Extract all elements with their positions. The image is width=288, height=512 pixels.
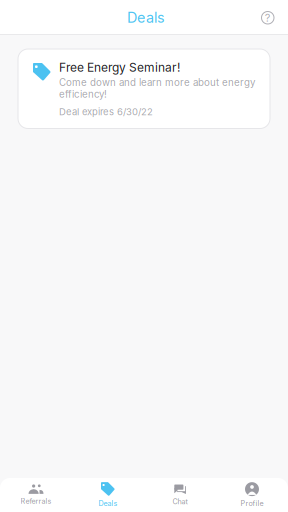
staticText: Come down and learn more about energy ef… [59, 76, 255, 100]
button[interactable]: Help [261, 10, 288, 24]
staticText: Deals [98, 499, 117, 508]
staticText: Referrals [20, 497, 51, 506]
staticText: ? [265, 11, 271, 24]
staticText: Deal expires 6/30/22 [59, 106, 153, 118]
button[interactable]: Chat [144, 478, 216, 512]
button[interactable]: Free Energy Seminar! [0, 35, 288, 128]
button[interactable]: Profile [216, 478, 288, 512]
staticText: Free Energy Seminar! [59, 60, 180, 74]
button[interactable]: Deals [72, 478, 144, 512]
staticText: Chat [172, 497, 187, 506]
staticText: Deals [127, 9, 165, 26]
staticText: Profile [240, 499, 263, 508]
button[interactable]: Referrals [0, 478, 72, 512]
